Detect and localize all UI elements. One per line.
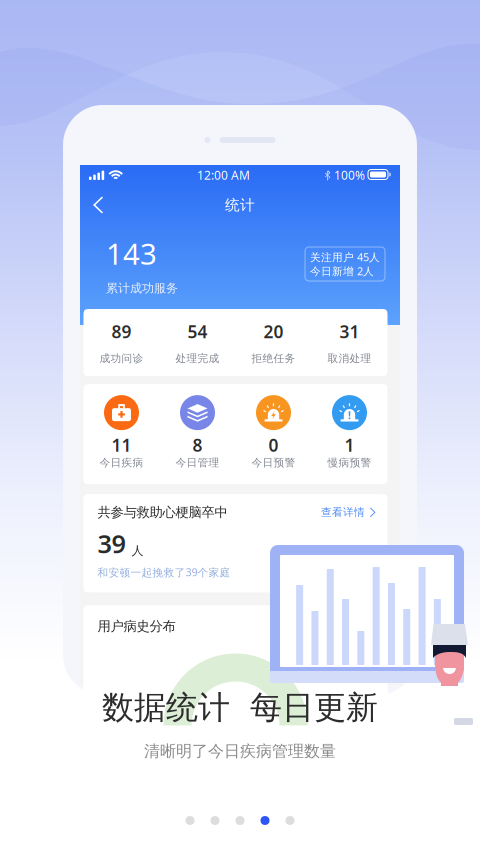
staticText: 清晰明了今日疾病管理数量 <box>144 741 336 761</box>
button[interactable]: 11 <box>83 395 159 468</box>
staticText: 今日预警 <box>251 456 295 469</box>
staticText: 1 <box>344 434 354 457</box>
staticText: 今日疾病 <box>99 456 143 469</box>
button[interactable]: 0 <box>235 395 311 468</box>
staticText: 数据统计 每日更新 <box>102 688 378 727</box>
staticText: 54 <box>187 320 207 343</box>
staticText: 统计 <box>225 196 255 214</box>
staticText: 100% <box>334 167 365 183</box>
staticText: 143 <box>106 234 157 273</box>
staticText: 累计成功服务 <box>106 281 178 296</box>
staticText: 11 <box>111 434 131 457</box>
staticText: 处理完成 <box>175 352 219 365</box>
button[interactable]: Back <box>80 188 119 221</box>
staticText: 31 <box>339 320 359 343</box>
staticText: 关注用户 45人 <box>310 250 380 264</box>
staticText: 拒绝任务 <box>251 352 295 365</box>
staticText: 慢病预警 <box>327 456 371 469</box>
staticText: 今日管理 <box>175 456 219 469</box>
staticText: 取消处理 <box>327 352 371 365</box>
staticText: 89 <box>111 320 131 343</box>
staticText: 12:00 AM <box>197 167 250 183</box>
button[interactable]: 1 <box>311 395 387 468</box>
button[interactable]: 查看详情 <box>321 506 375 519</box>
staticText: 8 <box>192 434 202 457</box>
staticText: 今日新增 2人 <box>310 264 374 278</box>
staticText: 39 <box>97 526 125 560</box>
staticText: 共参与救助心梗脑卒中 <box>97 504 227 520</box>
staticText: 20 <box>263 320 283 343</box>
staticText: 成功问诊 <box>99 352 143 365</box>
staticText: 用户病史分布 <box>97 618 175 634</box>
staticText: 和安顿一起挽救了39个家庭 <box>97 565 230 579</box>
staticText: 人 <box>131 543 143 558</box>
button[interactable]: 8 <box>159 395 235 468</box>
staticText: 54% <box>223 704 247 719</box>
staticText: 0 <box>268 434 278 457</box>
staticText: 查看详情 <box>321 506 365 519</box>
